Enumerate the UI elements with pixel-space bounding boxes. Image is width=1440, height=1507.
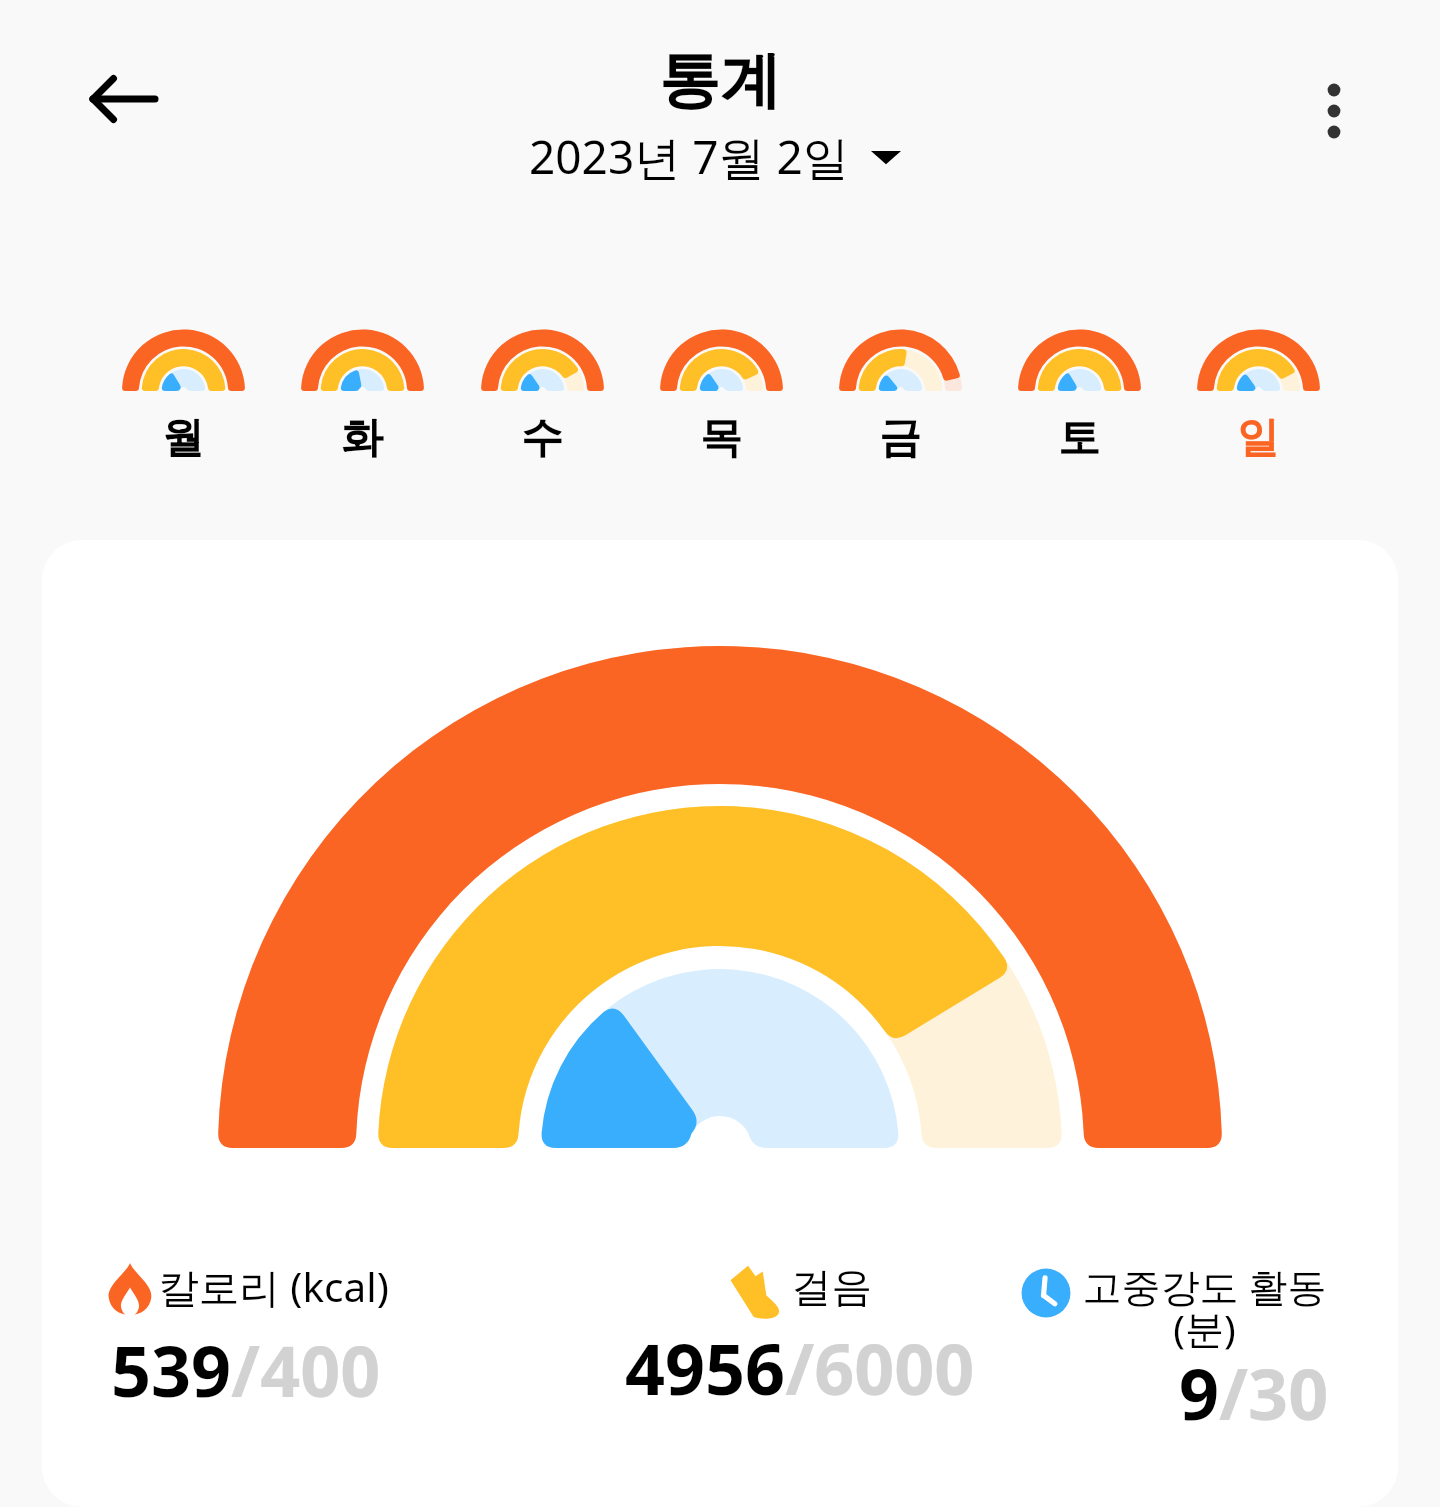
button[interactable]: Back (64, 39, 184, 159)
button[interactable]: 고중강도 활동 (분) (975, 1259, 1371, 1449)
staticText: 월 (162, 412, 204, 465)
staticText: 일 (1237, 412, 1279, 465)
button[interactable]: 금 (810, 321, 990, 465)
staticText: 고중강도 활동 (분) (1082, 1259, 1327, 1354)
button[interactable]: 걸음 (602, 1262, 998, 1415)
button[interactable]: 월 (93, 321, 273, 465)
staticText: 칼로리 (kcal) (158, 1259, 389, 1314)
staticText: 목 (700, 412, 742, 465)
staticText: 토 (1058, 412, 1100, 465)
staticText: 화 (341, 412, 383, 465)
staticText: 4956/6000 (625, 1320, 975, 1415)
staticText: 걸음 (791, 1262, 872, 1313)
staticText: 2023년 7월 2일 (529, 125, 849, 188)
staticText: 통계 (659, 42, 781, 119)
button[interactable]: More options (1284, 61, 1384, 161)
staticText: 539/400 (111, 1322, 381, 1417)
button[interactable]: 토 (989, 321, 1169, 465)
button[interactable]: 일 (1168, 321, 1348, 465)
button[interactable]: 칼로리 (kcal) (48, 1259, 444, 1417)
staticText: 9/30 (1179, 1345, 1329, 1440)
button[interactable]: 수 (452, 321, 632, 465)
button[interactable]: 목 (631, 321, 811, 465)
button[interactable]: 화 (272, 321, 452, 465)
button[interactable]: 2023년 7월 2일 (529, 125, 901, 188)
staticText: 금 (879, 412, 921, 465)
staticText: 수 (521, 412, 563, 465)
